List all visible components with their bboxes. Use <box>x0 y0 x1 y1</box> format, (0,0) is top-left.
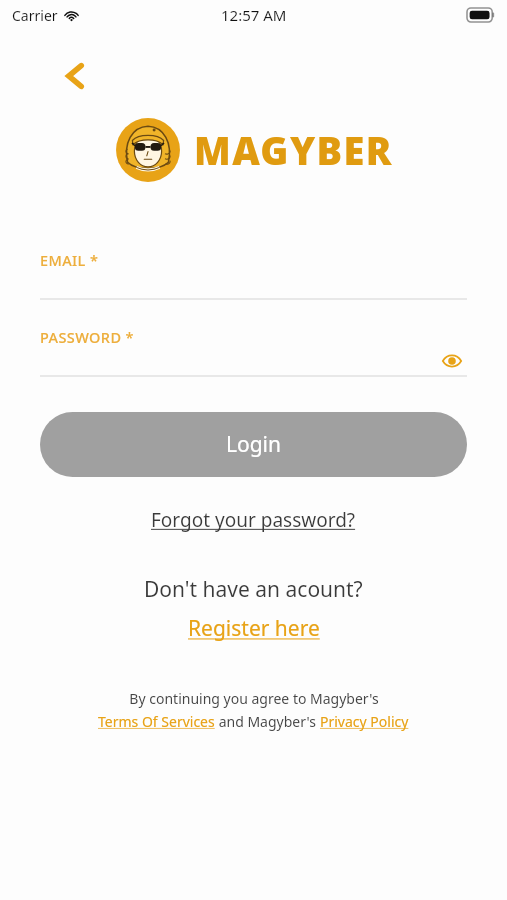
button[interactable]: Back <box>58 59 92 93</box>
button[interactable]: Terms Of Services <box>98 712 215 731</box>
staticText: EMAIL * <box>40 250 99 270</box>
button[interactable]: Register here <box>182 612 326 645</box>
staticText: Login <box>226 430 282 459</box>
button[interactable]: Forgot your password? <box>145 505 362 535</box>
staticText: 12:57 AM <box>221 5 287 25</box>
button[interactable]: Login <box>40 412 467 477</box>
staticText: By continuing you agree to Magyber's <box>129 689 379 708</box>
button[interactable]: Show password <box>437 347 467 375</box>
staticText: MAGYBER <box>194 124 393 176</box>
staticText: Carrier <box>12 6 58 25</box>
button[interactable]: Privacy Policy <box>320 712 409 731</box>
staticText: and Magyber's <box>215 712 320 731</box>
staticText: PASSWORD * <box>40 327 134 347</box>
staticText: Don't have an acount? <box>144 575 363 604</box>
